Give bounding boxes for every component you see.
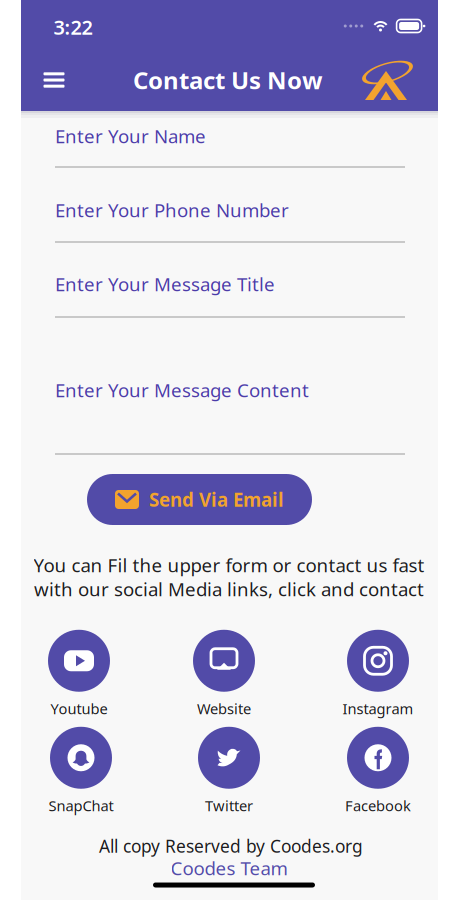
button[interactable]: SnapChat [22, 727, 140, 815]
staticText: Enter Your Name [55, 124, 206, 148]
button[interactable]: Send Via Email [87, 474, 312, 525]
button[interactable]: Coodes Team [170, 856, 287, 880]
staticText: Send Via Email [149, 487, 284, 512]
button[interactable]: Menu [31, 57, 77, 103]
staticText: All copy Reserved by Coodes.org [99, 834, 363, 857]
button[interactable]: Website [165, 630, 283, 718]
button[interactable]: Company logo [360, 57, 412, 103]
staticText: Twitter [205, 796, 253, 815]
staticText: Youtube [50, 699, 107, 718]
button[interactable]: Facebook [319, 727, 437, 815]
staticText: Instagram [342, 699, 413, 718]
button[interactable]: Instagram [319, 630, 437, 718]
staticText: Facebook [345, 796, 411, 815]
staticText: Contact Us Now [133, 64, 323, 96]
staticText: Enter Your Phone Number [55, 198, 289, 222]
button[interactable]: Twitter [170, 727, 288, 815]
staticText: 3:22 [53, 14, 92, 40]
staticText: You can Fil the upper form or contact us… [33, 553, 424, 577]
button[interactable]: Youtube [20, 630, 138, 718]
staticText: with our social Media links, click and c… [34, 577, 424, 601]
staticText: Website [197, 699, 251, 718]
staticText: SnapChat [48, 796, 113, 815]
staticText: Enter Your Message Title [55, 272, 275, 296]
staticText: Coodes Team [170, 856, 287, 880]
staticText: Enter Your Message Content [55, 378, 309, 402]
